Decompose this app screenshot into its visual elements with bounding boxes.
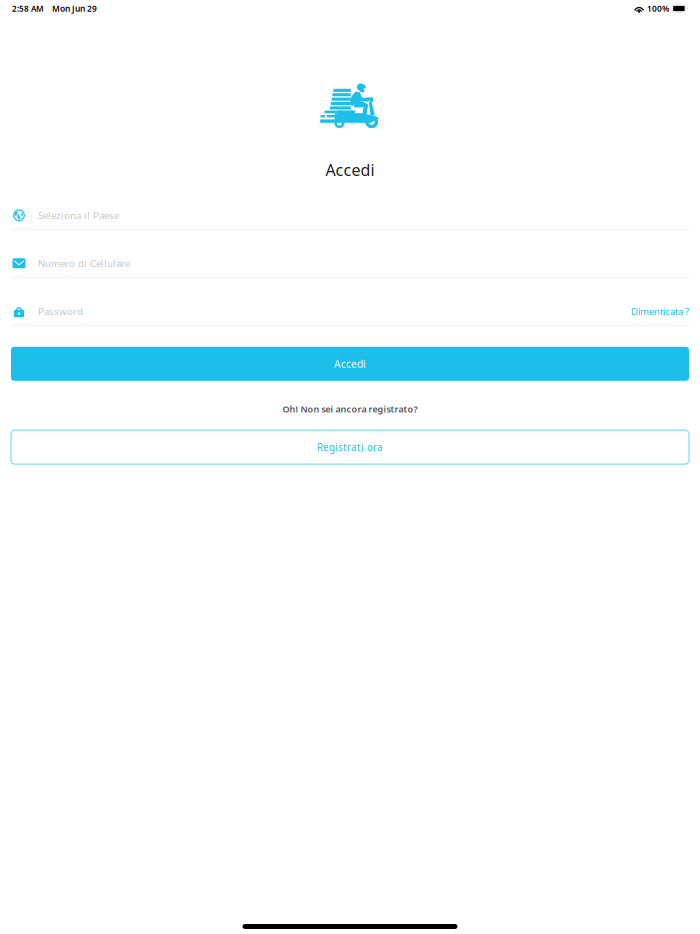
staticText: Seleziona il Paese <box>38 209 119 222</box>
button[interactable]: Registrati ora <box>11 430 689 464</box>
staticText: 2:58 AM <box>12 3 44 14</box>
staticText: Accedi <box>325 159 374 181</box>
staticText: Oh! Non sei ancora registrato? <box>282 403 417 415</box>
staticText: Dimenticata ? <box>631 305 689 318</box>
staticText: Password <box>38 305 83 318</box>
staticText: Registrati ora <box>317 440 383 454</box>
staticText: Mon Jun 29 <box>52 3 97 14</box>
staticText: 100% <box>647 3 669 14</box>
staticText: Numero di Cellulare <box>38 257 130 270</box>
staticText: Accedi <box>334 357 366 371</box>
button[interactable]: Dimenticata ? <box>623 305 689 318</box>
button[interactable]: Accedi <box>11 347 689 381</box>
